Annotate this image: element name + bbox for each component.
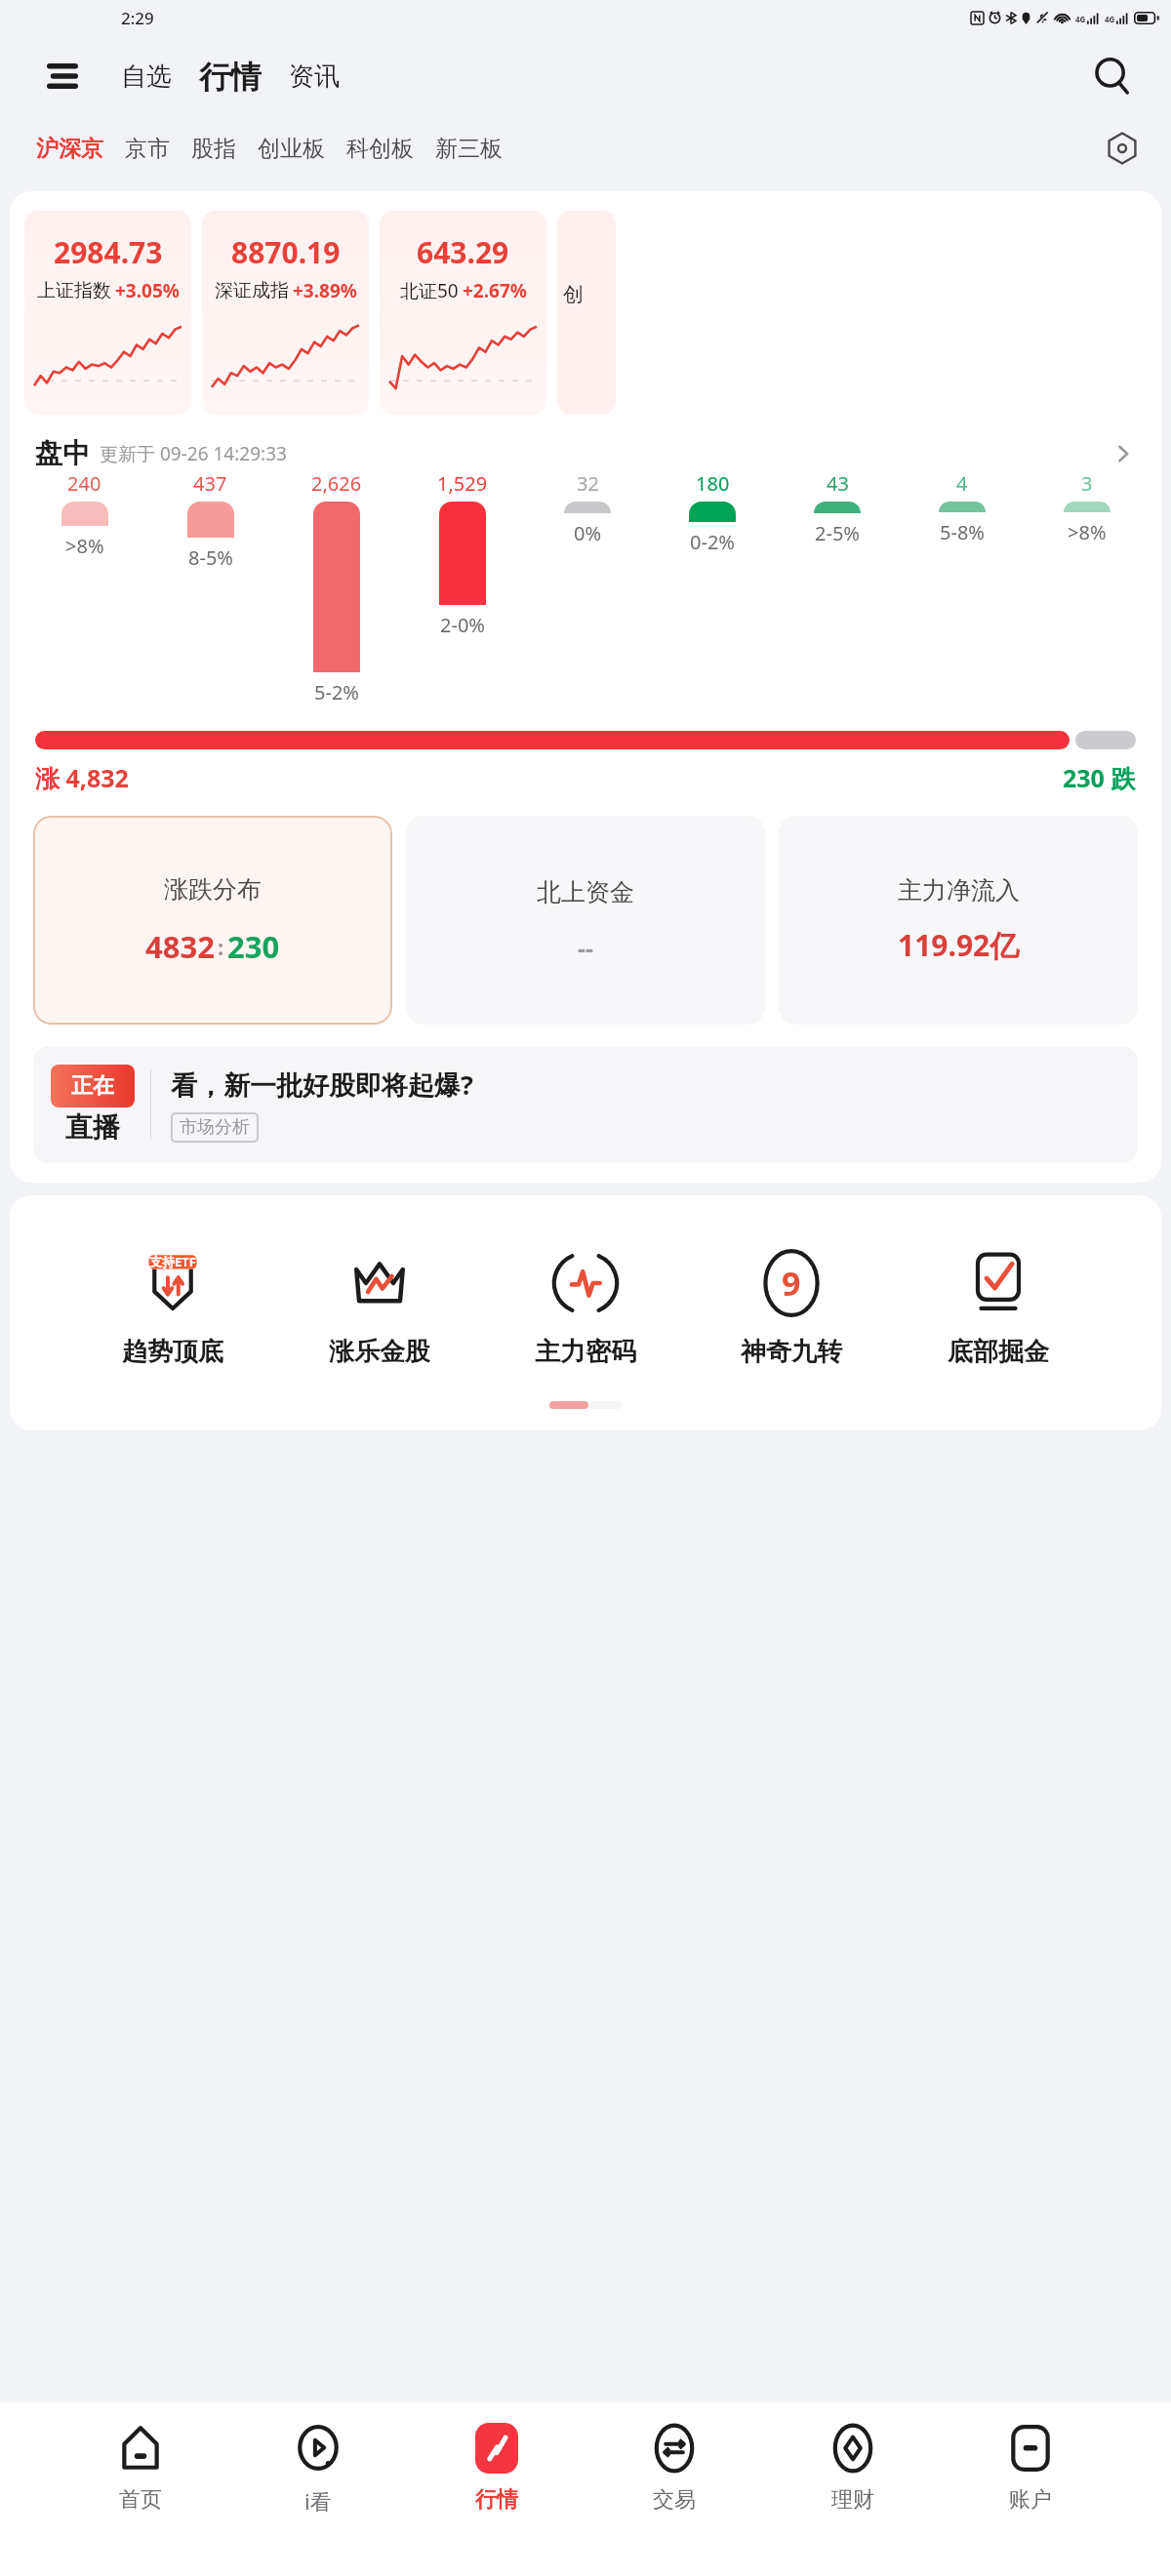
button[interactable]: 股指 xyxy=(181,127,247,171)
staticText: 深证成指 xyxy=(215,279,289,302)
staticText: 科创板 xyxy=(346,135,414,163)
staticText: 4G xyxy=(1075,14,1086,24)
staticText: +2.67% xyxy=(463,278,527,303)
staticText: 119.92亿 xyxy=(898,925,1020,965)
staticText: >8% xyxy=(65,533,104,559)
staticText: 230 跌 xyxy=(1063,761,1136,794)
button[interactable]: 首页 xyxy=(102,2416,179,2517)
staticText: 神奇九转 xyxy=(741,1336,842,1368)
staticText: 自选 xyxy=(121,60,172,93)
button[interactable]: 新三板 xyxy=(424,127,513,171)
staticText: 2-0% xyxy=(440,612,485,638)
staticText: 2-5% xyxy=(815,520,860,546)
staticText: 涨乐金股 xyxy=(329,1336,430,1368)
staticText: 1,529 xyxy=(437,470,488,497)
staticText: 涨 4,832 xyxy=(35,761,129,794)
staticText: 沪深京 xyxy=(36,135,103,163)
staticText: 北上资金 xyxy=(537,877,634,907)
staticText: 4 xyxy=(956,470,968,497)
button[interactable]: 行情 xyxy=(185,54,275,101)
staticText: 8-5% xyxy=(188,544,233,571)
staticText: 行情 xyxy=(475,2486,518,2514)
staticText: 市场分析 xyxy=(180,1116,250,1139)
staticText: 2984.73 xyxy=(54,232,163,272)
button[interactable]: 2984.73 xyxy=(24,211,191,415)
staticText: 32 xyxy=(577,470,599,497)
staticText: 支持ETF xyxy=(149,1253,196,1270)
button[interactable]: 自选 xyxy=(107,53,185,101)
button[interactable]: 创 xyxy=(557,211,616,415)
staticText: 3 xyxy=(1081,470,1093,497)
staticText: 9 xyxy=(782,1261,801,1306)
button[interactable]: 9 xyxy=(735,1242,848,1372)
staticText: 4832 xyxy=(145,926,215,967)
staticText: 8870.19 xyxy=(231,232,341,272)
button[interactable]: 涨跌分布 xyxy=(33,816,392,1025)
staticText: 新三板 xyxy=(435,135,503,163)
staticText: 看，新一批好股即将起爆? xyxy=(171,1067,473,1103)
staticText: 资讯 xyxy=(289,60,340,93)
staticText: 理财 xyxy=(831,2486,874,2514)
staticText: 底部掘金 xyxy=(948,1336,1049,1368)
button[interactable]: Menu xyxy=(41,55,84,98)
button[interactable]: 理财 xyxy=(815,2416,891,2517)
button[interactable]: 涨乐金股 xyxy=(323,1242,436,1372)
staticText: -- xyxy=(578,931,594,964)
button[interactable]: 交易 xyxy=(636,2416,712,2517)
button[interactable]: 盘中 xyxy=(35,436,1136,470)
staticText: 0-2% xyxy=(690,529,735,555)
staticText: 5-2% xyxy=(314,679,359,705)
staticText: 2:29 xyxy=(121,7,154,29)
button[interactable]: 创业板 xyxy=(247,127,336,171)
button[interactable]: More markets xyxy=(1097,123,1148,174)
staticText: 2,626 xyxy=(311,470,362,497)
staticText: 0% xyxy=(574,520,602,546)
button[interactable]: 8870.19 xyxy=(202,211,369,415)
button[interactable]: Search xyxy=(1087,51,1138,101)
staticText: 43 xyxy=(827,470,849,497)
staticText: 行情 xyxy=(199,58,262,97)
staticText: 创业板 xyxy=(258,135,325,163)
staticText: 北证50 xyxy=(400,278,459,303)
staticText: 437 xyxy=(193,470,227,497)
button[interactable]: 京市 xyxy=(114,127,181,171)
staticText: 首页 xyxy=(119,2486,162,2514)
staticText: 京市 xyxy=(125,135,170,163)
button[interactable]: 北上资金 xyxy=(406,816,765,1025)
staticText: 涨跌分布 xyxy=(164,874,262,905)
button[interactable]: 沪深京 xyxy=(25,127,114,171)
staticText: 240 xyxy=(67,470,101,497)
button[interactable]: 科创板 xyxy=(336,127,424,171)
staticText: 643.29 xyxy=(417,232,509,272)
button[interactable]: 主力密码 xyxy=(529,1242,642,1372)
button[interactable]: i看 xyxy=(280,2416,356,2519)
staticText: 交易 xyxy=(653,2486,696,2514)
staticText: 5-8% xyxy=(940,519,985,545)
staticText: : xyxy=(218,932,224,961)
staticText: i看 xyxy=(304,2486,332,2516)
button[interactable]: 资讯 xyxy=(275,53,353,101)
staticText: 盘中 xyxy=(35,436,90,470)
button[interactable]: 主力净流入 xyxy=(779,816,1138,1025)
staticText: 主力密码 xyxy=(535,1336,636,1368)
staticText: 230 xyxy=(227,926,280,967)
staticText: 主力净流入 xyxy=(898,875,1020,906)
staticText: 股指 xyxy=(191,135,236,163)
staticText: 创 xyxy=(563,282,584,307)
button[interactable]: 正在 xyxy=(33,1046,1138,1163)
staticText: +3.05% xyxy=(115,278,180,303)
staticText: 4G xyxy=(1105,14,1115,24)
staticText: +3.89% xyxy=(293,278,357,303)
staticText: 趋势顶底 xyxy=(122,1336,223,1368)
button[interactable]: 行情 xyxy=(459,2416,535,2517)
button[interactable]: 支持ETF xyxy=(116,1242,229,1372)
staticText: 上证指数 xyxy=(37,279,111,302)
button[interactable]: 底部掘金 xyxy=(942,1242,1055,1372)
staticText: 直播 xyxy=(65,1110,120,1145)
staticText: >8% xyxy=(1068,519,1107,545)
staticText: 账户 xyxy=(1009,2486,1052,2514)
staticText: 更新于 09-26 14:29:33 xyxy=(100,441,287,466)
staticText: 180 xyxy=(696,470,730,497)
button[interactable]: 643.29 xyxy=(380,211,546,415)
button[interactable]: 账户 xyxy=(992,2416,1069,2517)
